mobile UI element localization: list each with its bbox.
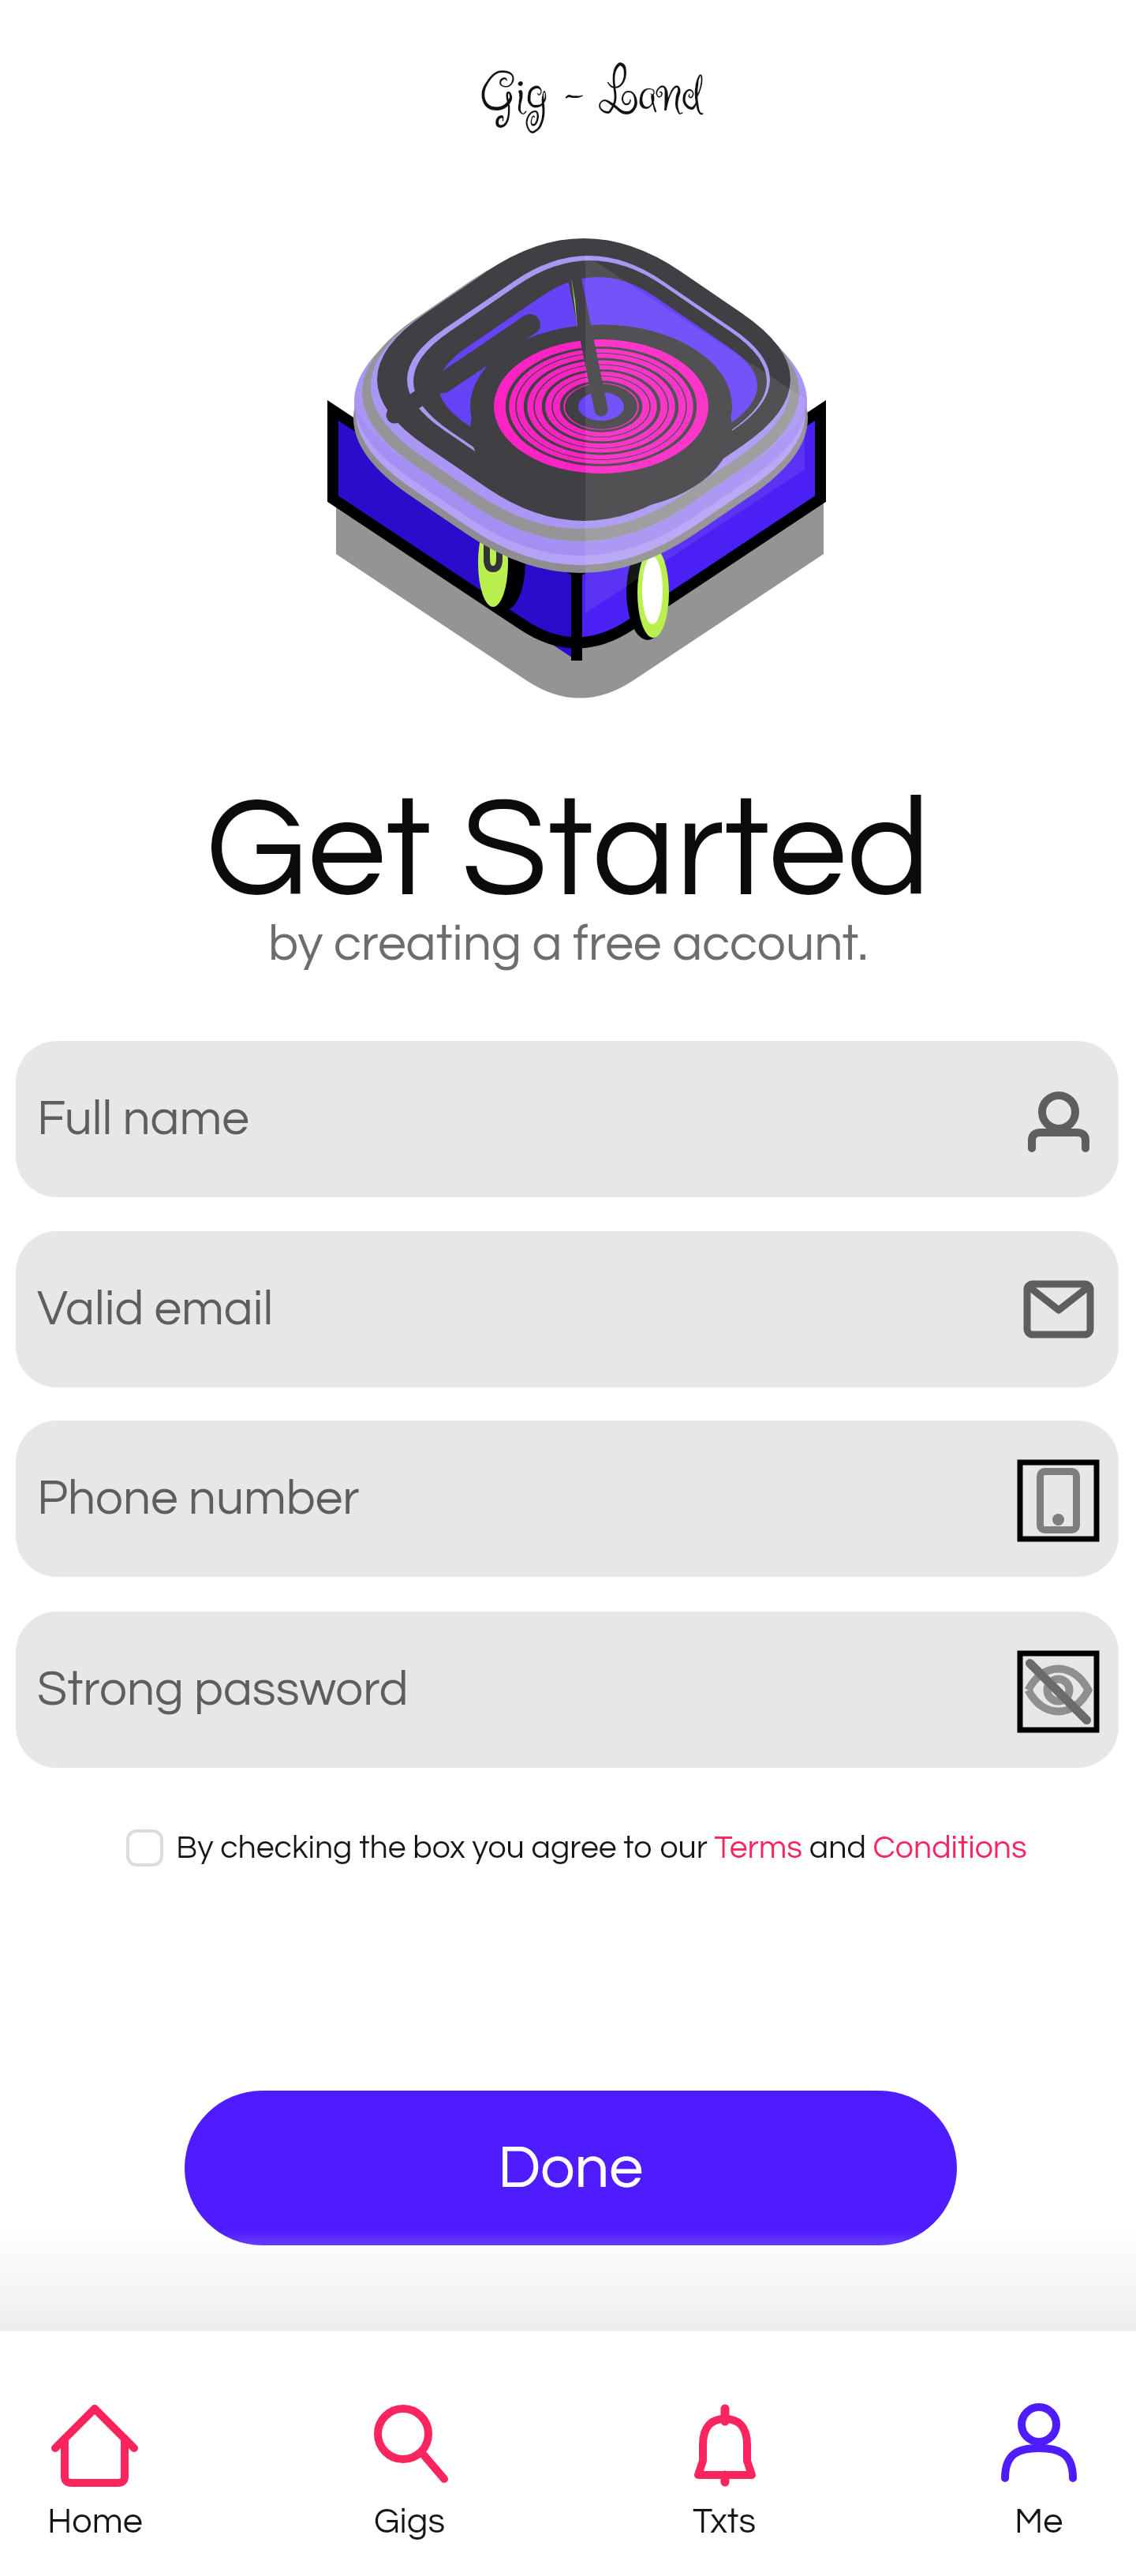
staticText: Valid email xyxy=(37,1284,274,1335)
staticText: Full name xyxy=(37,1094,249,1144)
button[interactable]: Done xyxy=(185,2091,957,2245)
other: Full name xyxy=(1011,1076,1097,1163)
staticText: Get Started xyxy=(206,779,931,923)
button[interactable]: Me xyxy=(905,2331,1136,2560)
staticText: Strong password xyxy=(37,1664,409,1715)
staticText: Done xyxy=(498,2137,644,2200)
button[interactable]: Strong password xyxy=(16,1612,1119,1768)
staticText: Me xyxy=(1015,2503,1063,2540)
button[interactable]: Home xyxy=(0,2331,229,2560)
button[interactable]: Txts xyxy=(590,2331,858,2560)
other: Strong password xyxy=(1011,1646,1097,1733)
other: Phone number xyxy=(1011,1455,1097,1542)
button[interactable]: Phone number xyxy=(16,1421,1119,1577)
staticText: Gigs xyxy=(374,2503,446,2540)
staticText: Txts xyxy=(693,2503,757,2540)
button[interactable]: Agree to terms xyxy=(126,1829,163,1866)
staticText: Phone number xyxy=(37,1473,360,1524)
button[interactable]: Valid email xyxy=(16,1231,1119,1387)
button[interactable]: Gigs xyxy=(275,2331,544,2560)
staticText: By checking the box you agree to our Ter… xyxy=(176,1831,1027,1864)
button[interactable]: Full name xyxy=(16,1041,1119,1197)
staticText: by creating a free account. xyxy=(268,919,869,971)
other: Valid email xyxy=(1011,1266,1097,1353)
staticText: Gig - Land xyxy=(480,55,704,134)
staticText: Home xyxy=(47,2503,143,2540)
